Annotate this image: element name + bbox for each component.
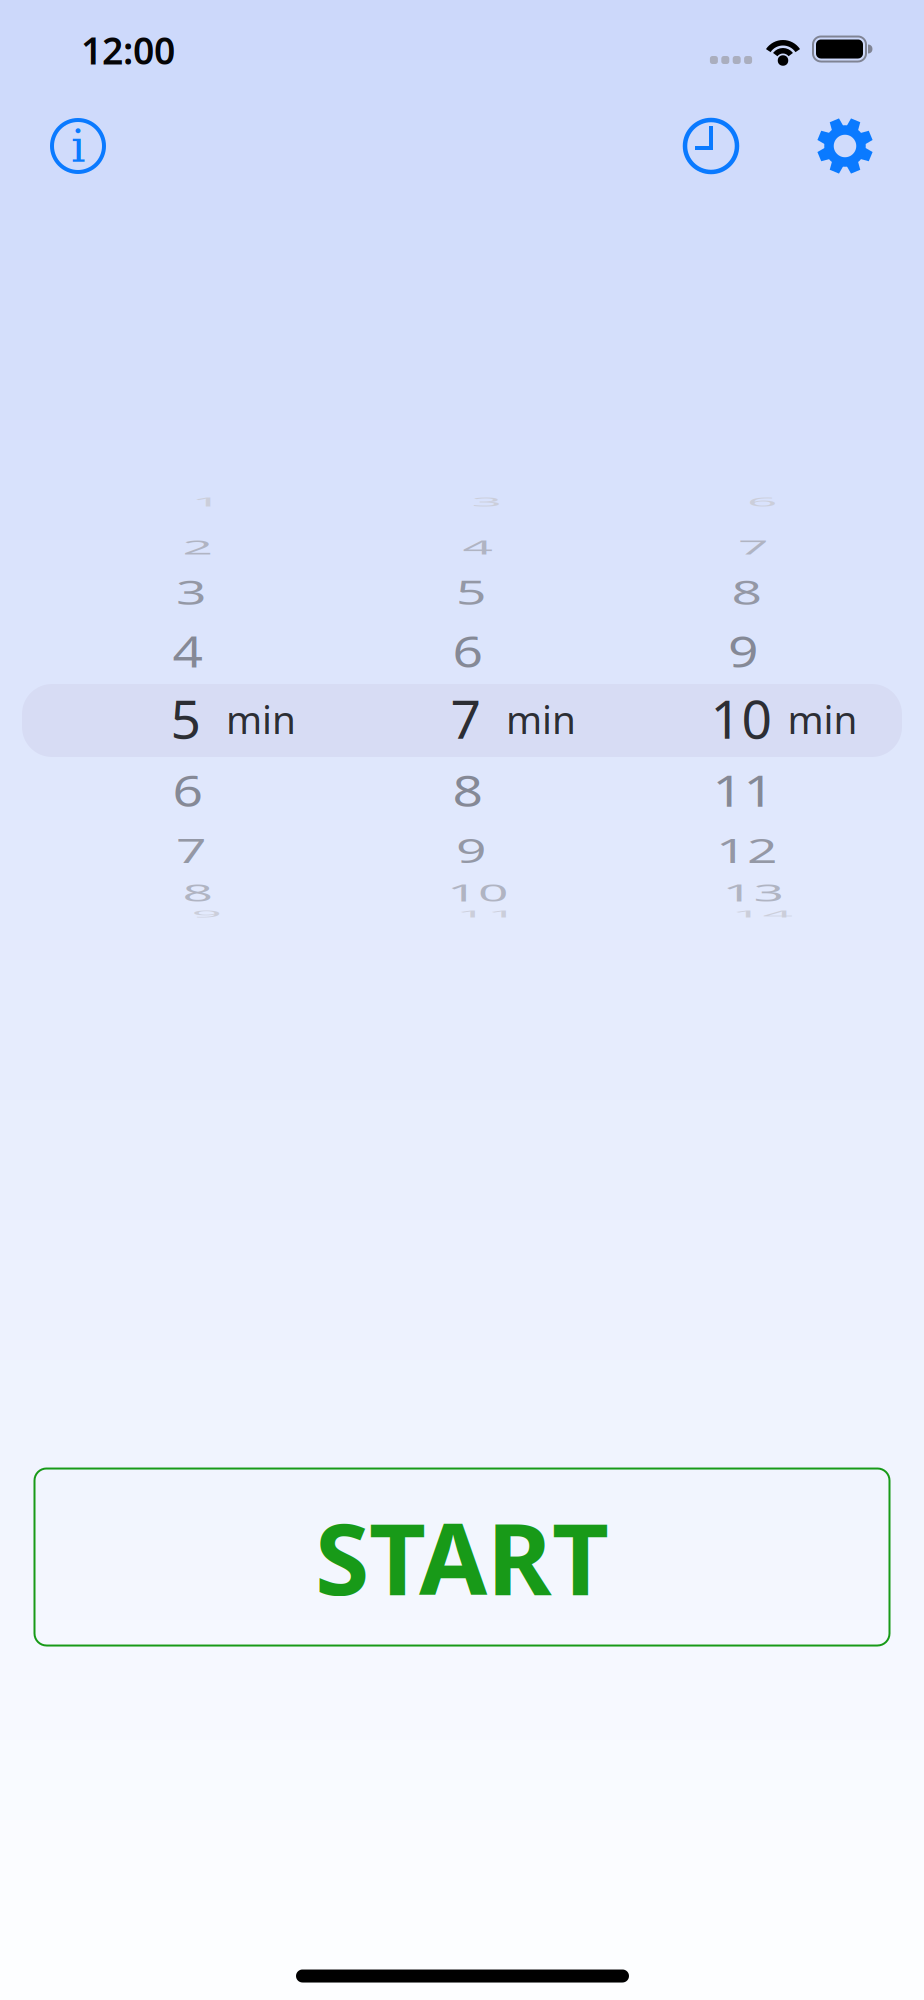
- staticText: 7: [738, 511, 769, 582]
- staticText: 11: [712, 754, 774, 825]
- button[interactable]: START: [34, 1468, 889, 1645]
- staticText: START: [315, 1491, 609, 1622]
- staticText: 7: [450, 683, 481, 753]
- staticText: 10: [710, 683, 772, 753]
- staticText: min: [506, 693, 576, 745]
- staticText: 9: [728, 615, 759, 686]
- staticText: 13: [722, 857, 784, 928]
- staticText: 6: [172, 754, 203, 825]
- staticText: i: [71, 120, 85, 172]
- staticText: 7: [176, 815, 207, 886]
- staticText: min: [787, 693, 857, 745]
- button[interactable]: Info: [50, 118, 106, 174]
- staticText: 9: [456, 815, 487, 886]
- staticText: 14: [731, 879, 793, 950]
- staticText: 5: [170, 683, 201, 753]
- button[interactable]: Settings: [817, 118, 873, 174]
- staticText: 4: [462, 511, 493, 582]
- staticText: 8: [452, 754, 483, 825]
- button[interactable]: History: [683, 118, 739, 174]
- staticText: 10: [447, 857, 509, 928]
- staticText: 3: [471, 467, 502, 537]
- staticText: 9: [191, 879, 222, 950]
- staticText: min: [226, 693, 296, 745]
- staticText: 1: [191, 467, 222, 537]
- staticText: 4: [172, 615, 203, 686]
- staticText: 6: [452, 615, 483, 686]
- staticText: 2: [182, 511, 213, 582]
- staticText: 5: [456, 556, 487, 627]
- staticText: 12: [716, 815, 778, 886]
- staticText: 11: [456, 879, 518, 950]
- staticText: 8: [731, 556, 762, 627]
- staticText: 3: [176, 556, 207, 627]
- staticText: 12:00: [81, 25, 175, 75]
- staticText: 8: [182, 857, 213, 928]
- staticText: 6: [747, 467, 778, 537]
